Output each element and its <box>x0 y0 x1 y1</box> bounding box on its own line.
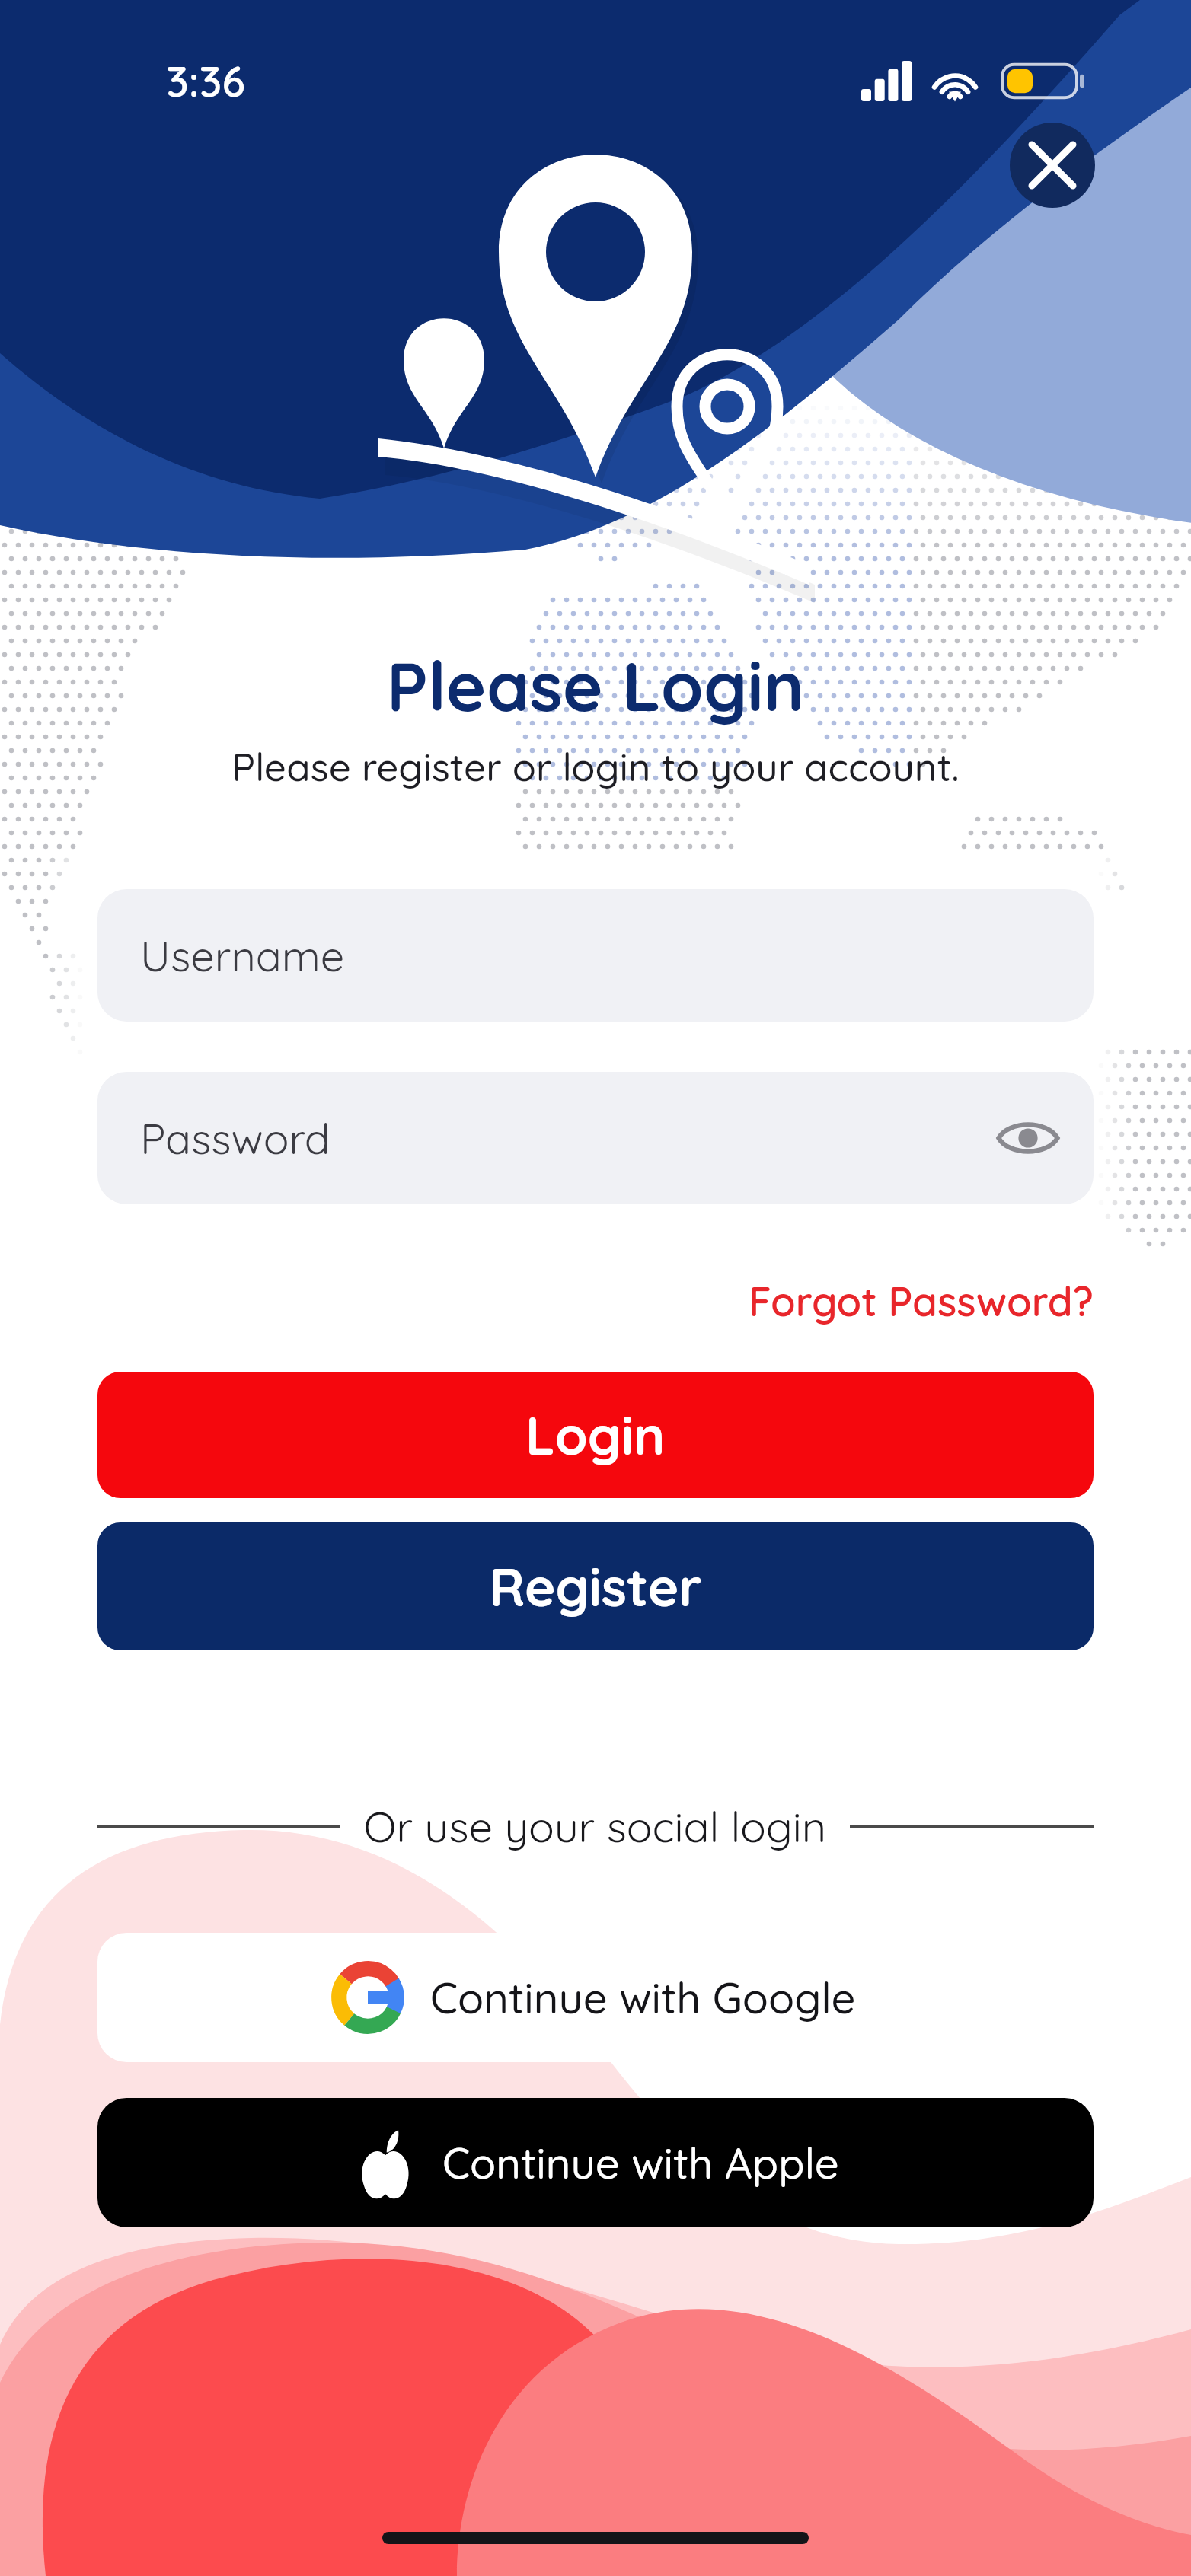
button[interactable]: Register <box>97 1522 1094 1650</box>
button[interactable]: Close <box>1010 123 1095 208</box>
button[interactable]: Password <box>97 1072 1094 1204</box>
staticText: Username <box>140 929 345 982</box>
staticText: Continue with Google <box>430 1971 856 2024</box>
staticText: Or use your social login <box>340 1800 850 1853</box>
staticText: Please register or login to your account… <box>0 742 1191 791</box>
button[interactable]: Forgot Password? <box>749 1276 1094 1326</box>
button[interactable]: Show password <box>996 1106 1060 1170</box>
staticText: Register <box>489 1554 702 1619</box>
button[interactable]: Login <box>97 1372 1094 1498</box>
staticText: Login <box>525 1402 666 1468</box>
staticText: 3:36 <box>166 54 246 107</box>
button[interactable]: Continue with Google <box>97 1933 1094 2062</box>
button[interactable]: Username <box>97 889 1094 1022</box>
button[interactable]: Continue with Apple <box>97 2098 1094 2227</box>
staticText: Password <box>140 1111 330 1165</box>
staticText: Please Login <box>0 642 1191 728</box>
staticText: Continue with Apple <box>442 2136 839 2189</box>
